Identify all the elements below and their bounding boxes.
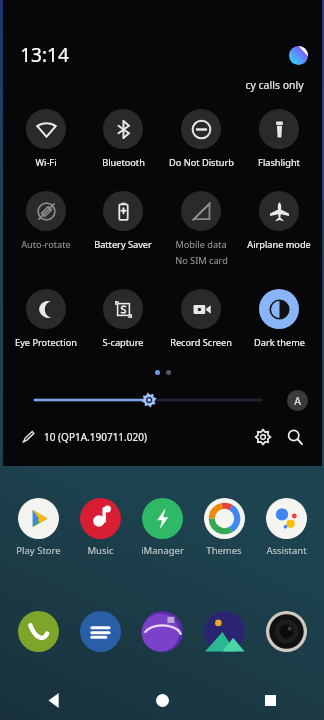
button[interactable]: Browser <box>132 611 192 652</box>
staticText: Airplane mode <box>247 238 311 251</box>
button[interactable]: Music <box>70 498 130 557</box>
button[interactable]: Auto-rotate <box>7 191 84 251</box>
button[interactable]: Home <box>108 680 216 720</box>
button[interactable]: S-capture <box>84 289 162 349</box>
button[interactable]: Edit <box>17 426 39 448</box>
staticText: Mobile data <box>175 238 227 251</box>
button[interactable]: Search <box>282 424 308 450</box>
staticText: A <box>294 394 301 408</box>
staticText: Do Not Disturb <box>169 156 234 169</box>
button[interactable]: Themes <box>194 498 254 557</box>
staticText: Battery Saver <box>94 238 152 251</box>
staticText: Flashlight <box>258 156 300 169</box>
button[interactable]: iManager <box>132 498 192 557</box>
staticText: Dark theme <box>254 336 305 349</box>
staticText: Themes <box>206 544 242 557</box>
staticText: Bluetooth <box>102 156 145 169</box>
button[interactable]: Auto brightness <box>287 390 308 411</box>
button[interactable]: Assistant <box>256 498 316 557</box>
button[interactable]: Do Not Disturb <box>162 109 240 169</box>
button[interactable]: Phone <box>8 611 68 652</box>
staticText: iManager <box>141 544 184 557</box>
staticText: cy calls only <box>245 78 304 92</box>
button[interactable]: Camera <box>256 611 316 652</box>
staticText: Assistant <box>266 544 307 557</box>
staticText: Eye Protection <box>15 336 77 349</box>
staticText: Wi-Fi <box>35 156 57 169</box>
button[interactable]: Brightness <box>17 387 279 413</box>
staticText: Music <box>87 544 114 557</box>
staticText: No SIM card <box>175 254 228 267</box>
button[interactable]: Dark theme <box>240 289 318 349</box>
staticText: Auto-rotate <box>21 238 71 251</box>
button[interactable]: Airplane mode <box>240 191 318 251</box>
button[interactable]: Back <box>0 680 108 720</box>
button[interactable]: Record Screen <box>162 289 240 349</box>
button[interactable]: Flashlight <box>240 109 318 169</box>
button[interactable]: Bluetooth <box>84 109 162 169</box>
staticText: 13:14 <box>20 42 69 68</box>
staticText: S-capture <box>102 336 144 349</box>
button[interactable]: Eye Protection <box>7 289 84 349</box>
button[interactable]: Gallery <box>194 611 254 652</box>
button[interactable]: Recents <box>216 680 324 720</box>
staticText: 10 (QP1A.190711.020) <box>44 430 147 444</box>
button[interactable]: Mobile data <box>162 191 240 267</box>
button[interactable]: Settings <box>250 424 276 450</box>
staticText: Record Screen <box>170 336 232 349</box>
button[interactable]: Messages <box>70 611 130 652</box>
button[interactable]: Play Store <box>8 498 68 557</box>
staticText: Play Store <box>16 544 61 557</box>
button[interactable]: Battery Saver <box>84 191 162 251</box>
button[interactable]: Wi-Fi <box>7 109 84 169</box>
